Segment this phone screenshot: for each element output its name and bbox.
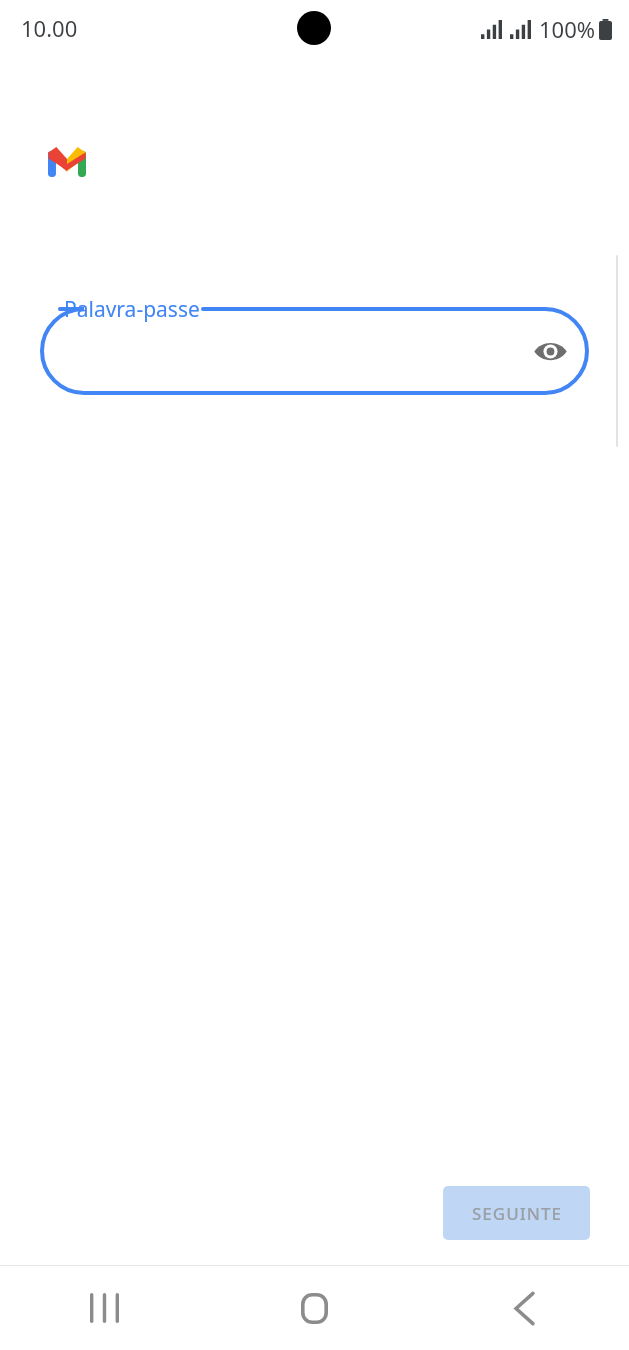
button[interactable]: Mostrar palavra-passe — [526, 327, 574, 375]
button[interactable]: Palavra-passe — [40, 307, 589, 395]
staticText: 10.00 — [21, 13, 78, 43]
staticText: SEGUINTE — [472, 1202, 562, 1225]
button[interactable]: Back — [419, 1266, 629, 1350]
button[interactable]: Home — [209, 1266, 419, 1350]
button[interactable]: Recents — [0, 1266, 209, 1350]
button[interactable]: SEGUINTE — [443, 1186, 590, 1240]
staticText: 100% — [539, 14, 596, 44]
staticText: Palavra-passe — [64, 295, 200, 324]
